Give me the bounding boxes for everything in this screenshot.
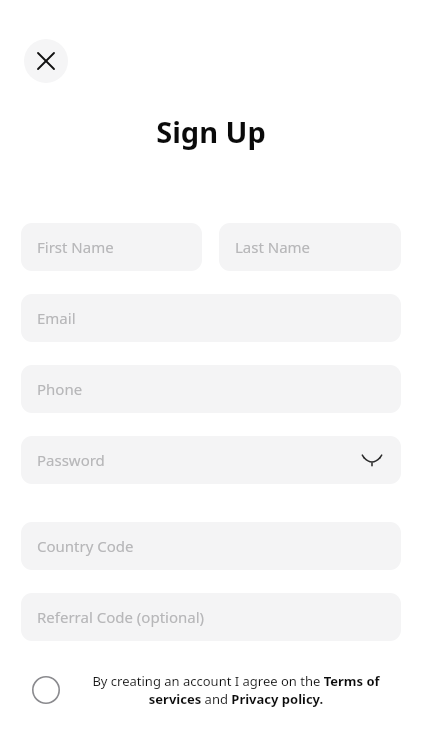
- staticText: Password: [37, 450, 105, 470]
- staticText: Referral Code (optional): [37, 607, 205, 627]
- button[interactable]: First Name: [21, 223, 202, 271]
- button[interactable]: Close: [24, 39, 68, 83]
- staticText: Phone: [37, 379, 83, 399]
- button[interactable]: Phone: [21, 365, 401, 413]
- button[interactable]: Referral Code (optional): [21, 593, 401, 641]
- staticText: Sign Up: [0, 112, 422, 151]
- staticText: Email: [37, 308, 76, 328]
- button[interactable]: Email: [21, 294, 401, 342]
- staticText: By creating an account I agree on the Te…: [74, 672, 398, 708]
- button[interactable]: Country Code: [21, 522, 401, 570]
- button[interactable]: Show password: [359, 447, 385, 473]
- staticText: Country Code: [37, 536, 134, 556]
- staticText: Last Name: [235, 237, 311, 257]
- button[interactable]: Last Name: [219, 223, 401, 271]
- button[interactable]: Password: [21, 436, 401, 484]
- staticText: First Name: [37, 237, 114, 257]
- button[interactable]: Agree to terms: [32, 676, 60, 704]
